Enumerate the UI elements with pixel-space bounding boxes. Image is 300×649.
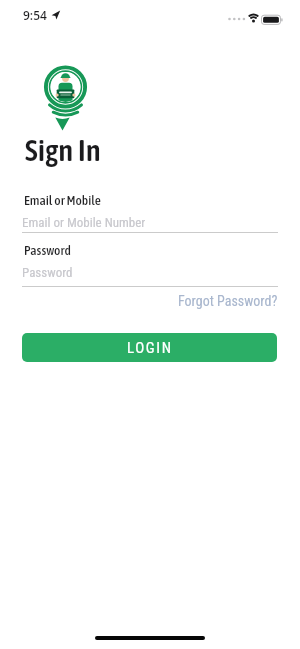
staticText: 9:54	[23, 7, 47, 23]
button[interactable]: LOGIN	[22, 333, 277, 362]
button[interactable]: Password	[22, 258, 278, 285]
staticText: Password	[24, 242, 71, 257]
staticText: Sign In	[25, 133, 102, 167]
staticText: Email or Mobile Number	[22, 215, 146, 230]
staticText: LOGIN	[127, 339, 173, 357]
staticText: Password	[22, 265, 73, 280]
button[interactable]: Forgot Password?	[178, 293, 278, 309]
button[interactable]: Email or Mobile Number	[22, 207, 278, 233]
staticText: Email or Mobile	[24, 192, 101, 207]
staticText: Forgot Password?	[178, 293, 278, 309]
